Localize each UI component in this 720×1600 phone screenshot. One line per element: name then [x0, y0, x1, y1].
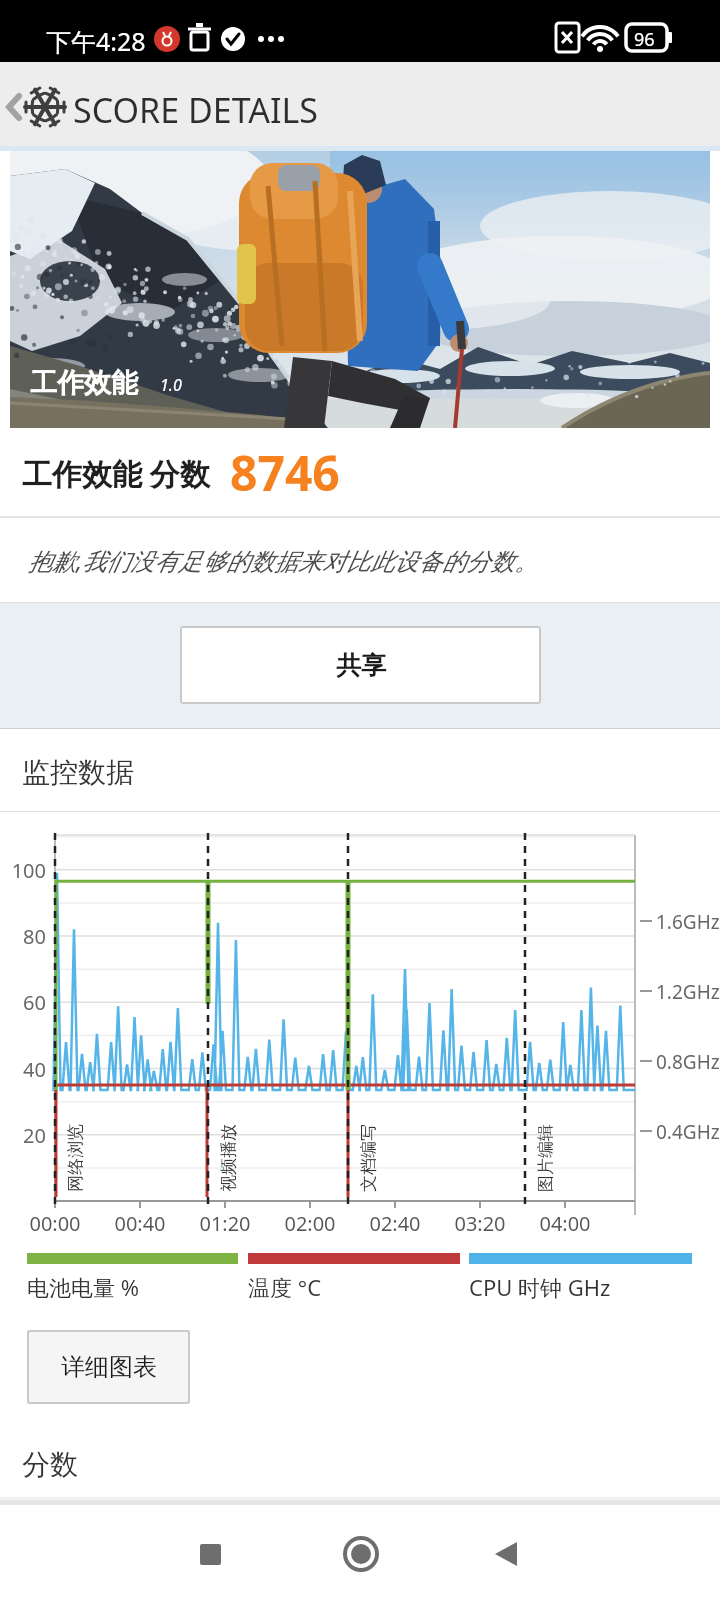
- staticText: 1.2GHz: [656, 979, 720, 1005]
- staticText: 抱歉,我们没有足够的数据来对比此设备的分数。: [28, 544, 539, 577]
- staticText: 60: [6, 989, 46, 1016]
- button[interactable]: [188, 1532, 232, 1576]
- staticText: 04:00: [535, 1210, 595, 1237]
- staticText: 温度 °C: [248, 1272, 322, 1302]
- staticText: 03:20: [450, 1210, 510, 1237]
- staticText: 电池电量 %: [27, 1272, 140, 1302]
- staticText: 图片编辑: [535, 1124, 556, 1192]
- staticText: 视频播放: [218, 1124, 239, 1192]
- staticText: 分数: [22, 1447, 78, 1482]
- staticText: 工作效能 分数: [22, 453, 210, 494]
- staticText: 工作效能: [30, 366, 138, 400]
- staticText: CPU 时钟 GHz: [469, 1272, 611, 1302]
- staticText: SCORE DETAILS: [73, 87, 318, 133]
- staticText: 100: [6, 857, 46, 884]
- staticText: 01:20: [195, 1210, 255, 1237]
- staticText: 详细图表: [61, 1352, 157, 1382]
- staticText: 40: [6, 1056, 46, 1083]
- staticText: 80: [6, 923, 46, 950]
- staticText: 00:40: [110, 1210, 170, 1237]
- staticText: 文档编写: [358, 1124, 379, 1192]
- staticText: 网络浏览: [65, 1124, 86, 1192]
- button[interactable]: [484, 1532, 528, 1576]
- staticText: 监控数据: [22, 755, 134, 790]
- staticText: 0.8GHz: [656, 1049, 720, 1075]
- staticText: 8746: [230, 440, 340, 505]
- staticText: 1.6GHz: [656, 909, 720, 935]
- button[interactable]: 共享: [180, 626, 541, 704]
- staticText: 共享: [336, 650, 386, 681]
- staticText: 0.4GHz: [656, 1119, 720, 1145]
- staticText: 96: [634, 27, 655, 52]
- button[interactable]: 详细图表: [27, 1330, 190, 1404]
- staticText: 02:40: [365, 1210, 425, 1237]
- button[interactable]: SCORE DETAILS: [0, 62, 720, 146]
- button[interactable]: [339, 1532, 383, 1576]
- staticText: 00:00: [25, 1210, 85, 1237]
- staticText: 1.0: [160, 374, 182, 396]
- staticText: 20: [6, 1122, 46, 1149]
- staticText: 下午4:28: [46, 24, 146, 58]
- staticText: 02:00: [280, 1210, 340, 1237]
